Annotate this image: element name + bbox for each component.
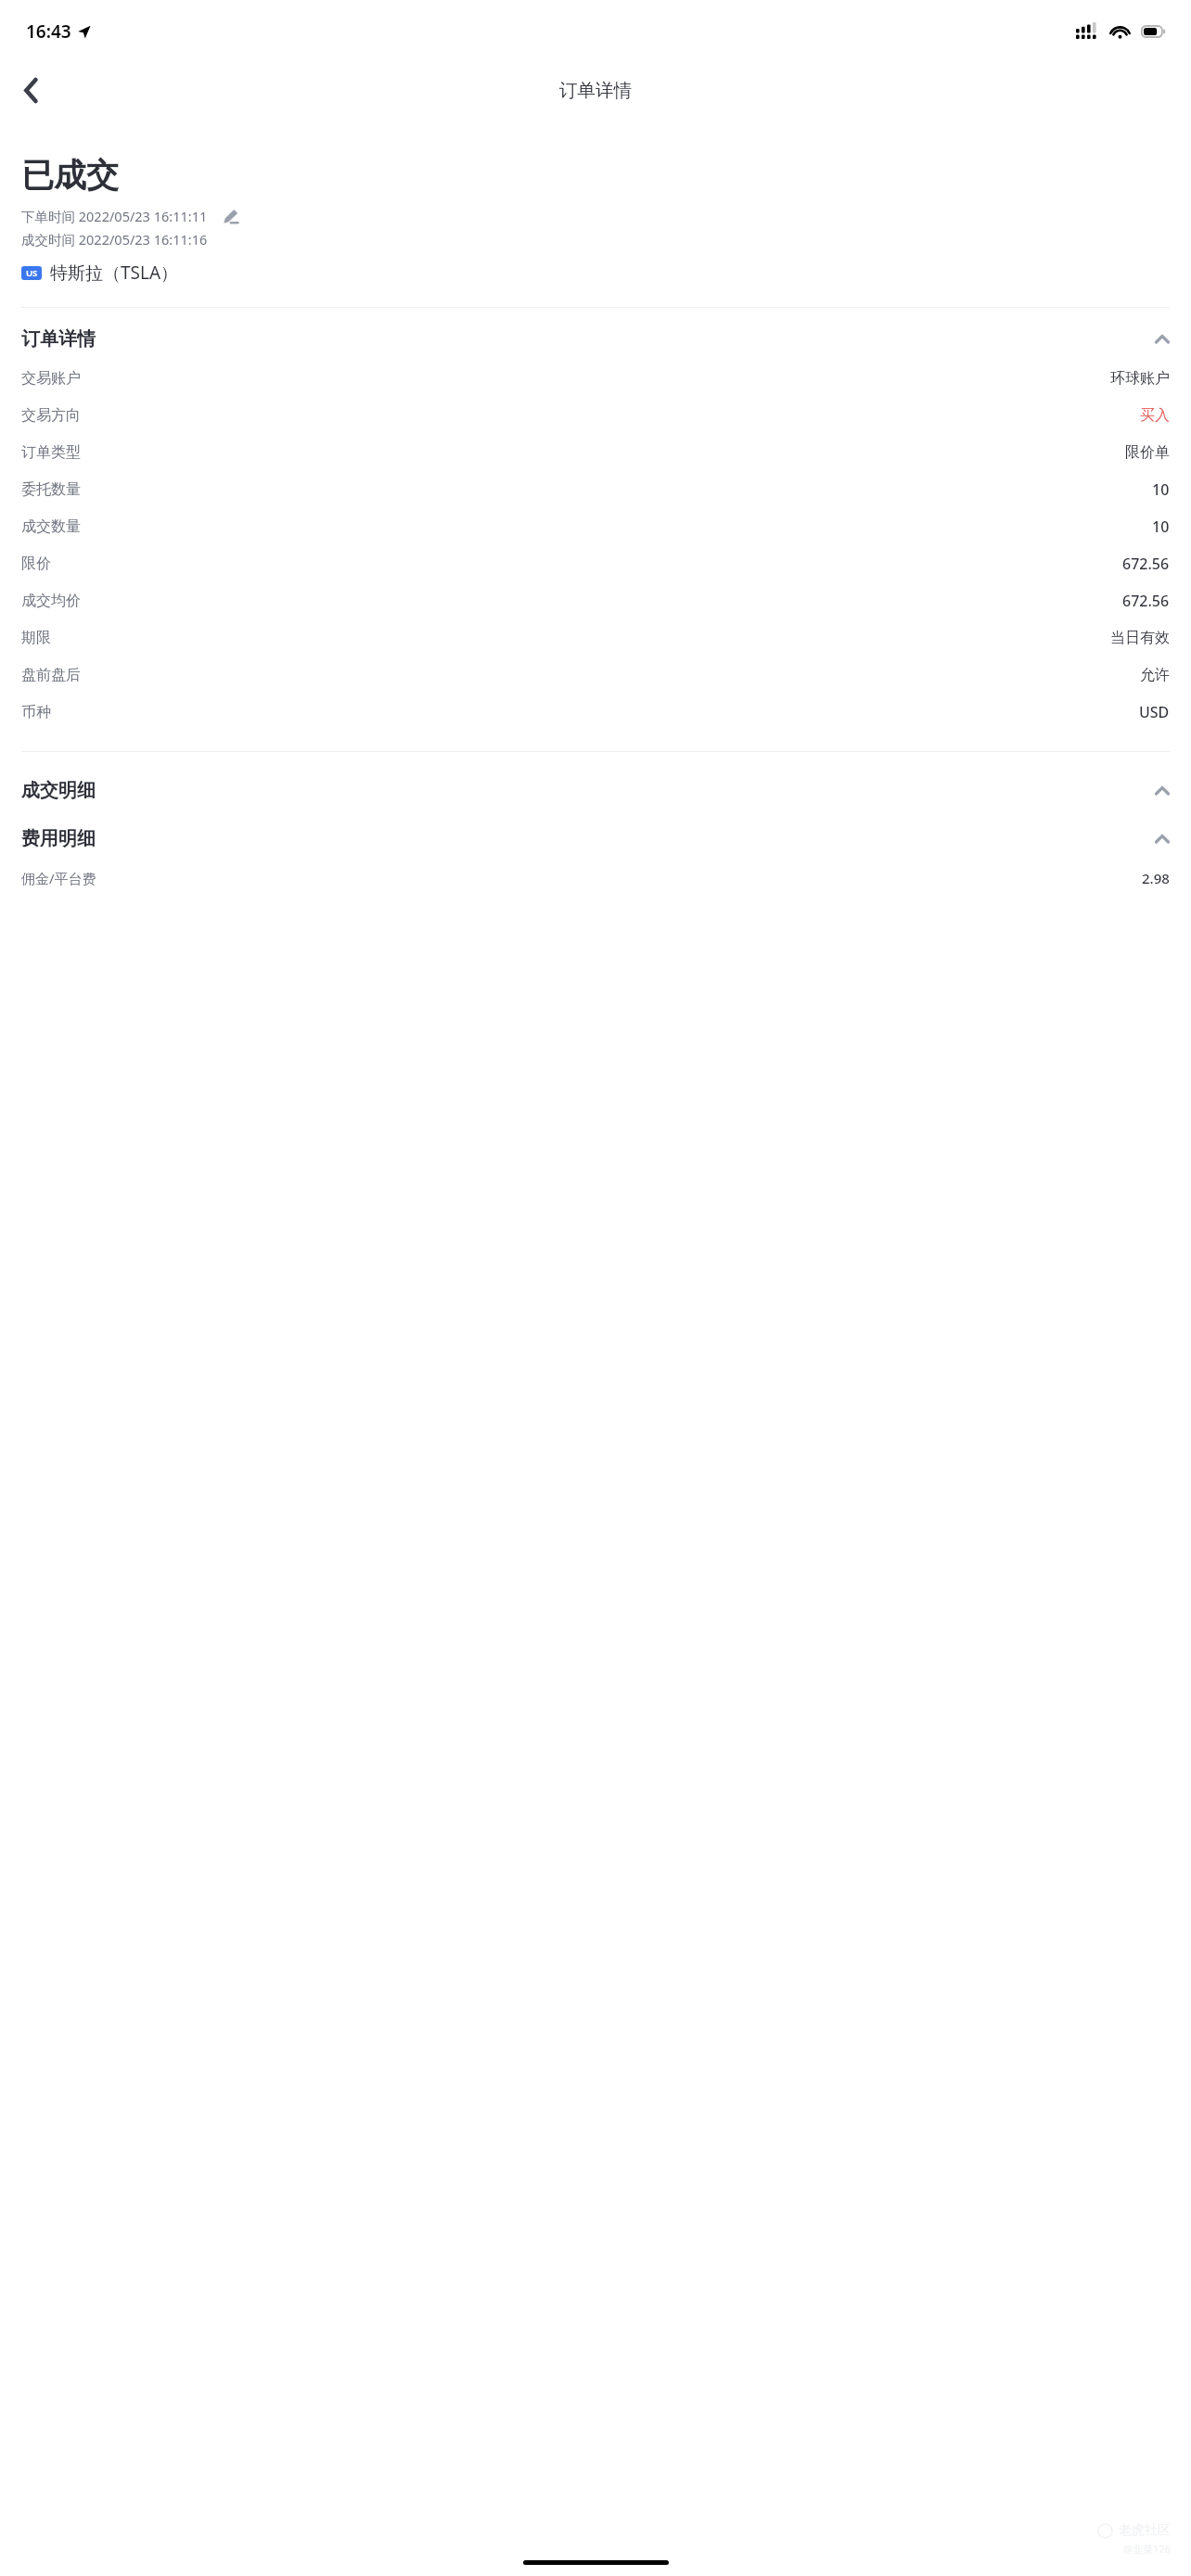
staticText: 环球账户 — [1110, 369, 1170, 388]
button[interactable]: 费用明细 — [0, 817, 1191, 860]
staticText: 买入 — [1140, 406, 1170, 425]
button[interactable]: Edit order — [220, 206, 240, 226]
button[interactable]: Back — [6, 65, 56, 115]
staticText: 特斯拉（TSLA） — [50, 261, 179, 285]
staticText: 成交数量 — [21, 517, 81, 536]
button[interactable]: 交易账户 — [0, 360, 1191, 397]
staticText: 费用明细 — [21, 827, 96, 850]
staticText: 订单类型 — [21, 443, 81, 462]
staticText: 交易方向 — [21, 406, 81, 425]
staticText: 2.98 — [1142, 869, 1170, 887]
staticText: 佣金/平台费 — [21, 869, 96, 887]
button[interactable]: 交易方向 — [0, 397, 1191, 434]
staticText: 10 — [1152, 479, 1170, 500]
button[interactable]: 盘前盘后 — [0, 657, 1191, 694]
staticText: 期限 — [21, 629, 51, 647]
button[interactable]: 币种 — [0, 694, 1191, 731]
staticText: 已成交 — [21, 155, 119, 196]
button[interactable]: 成交数量 — [0, 508, 1191, 545]
staticText: 允许 — [1140, 666, 1170, 684]
staticText: 672.56 — [1122, 591, 1170, 611]
button[interactable]: 成交明细 — [0, 769, 1191, 811]
staticText: 订单详情 — [559, 79, 632, 102]
staticText: 订单详情 — [21, 327, 96, 351]
staticText: 成交明细 — [21, 779, 96, 802]
staticText: 老虎社区 — [1119, 2522, 1171, 2539]
staticText: 16:43 — [26, 19, 71, 44]
staticText: 限价 — [21, 555, 51, 573]
staticText: 交易账户 — [21, 369, 81, 388]
staticText: 币种 — [21, 703, 51, 721]
button[interactable]: 委托数量 — [0, 471, 1191, 508]
staticText: 成交时间 2022/05/23 16:11:16 — [21, 230, 208, 249]
button[interactable]: 订单类型 — [0, 434, 1191, 471]
staticText: @韭菜126 — [1123, 2542, 1171, 2556]
staticText: 委托数量 — [21, 480, 81, 499]
button[interactable]: 限价 — [0, 545, 1191, 582]
staticText: 成交均价 — [21, 592, 81, 610]
staticText: 限价单 — [1125, 443, 1170, 462]
button[interactable]: 佣金/平台费 — [0, 860, 1191, 897]
button[interactable]: 订单详情 — [0, 317, 1191, 360]
staticText: 当日有效 — [1110, 629, 1170, 647]
button[interactable]: 成交均价 — [0, 582, 1191, 619]
staticText: 10 — [1152, 516, 1170, 537]
button[interactable]: 期限 — [0, 619, 1191, 657]
staticText: 下单时间 2022/05/23 16:11:11 — [21, 207, 208, 225]
staticText: US — [26, 267, 38, 279]
staticText: USD — [1139, 702, 1170, 722]
staticText: 盘前盘后 — [21, 666, 81, 684]
staticText: 672.56 — [1122, 554, 1170, 574]
